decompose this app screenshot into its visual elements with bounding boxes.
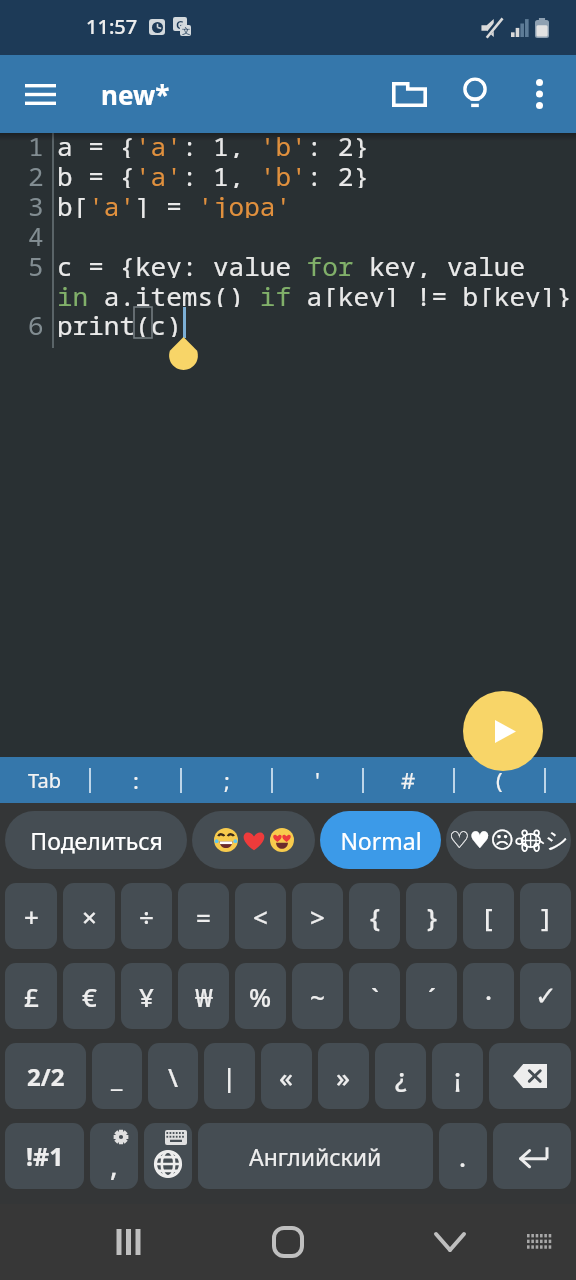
button[interactable]: · [463, 963, 514, 1029]
button[interactable]: Backspace [489, 1043, 571, 1109]
staticText: % [249, 979, 272, 1014]
button[interactable]: ✓ [520, 963, 571, 1029]
button[interactable]: < [235, 883, 286, 949]
staticText: Английский [249, 1141, 382, 1172]
button[interactable]: ¿ [375, 1043, 426, 1109]
button[interactable]: ₩ [178, 963, 229, 1029]
button[interactable]: Hide keyboard [420, 1204, 480, 1280]
button[interactable]: Keyboard switcher [510, 1204, 570, 1280]
staticText: !#1 [26, 1139, 64, 1173]
staticText: ¡ [454, 1059, 462, 1094]
button[interactable]: More options [508, 55, 570, 133]
staticText: 文 [182, 26, 190, 36]
staticText: { [370, 899, 380, 934]
button[interactable]: _ [92, 1043, 142, 1109]
staticText: Normal [340, 825, 422, 856]
button[interactable]: Enter [493, 1123, 571, 1189]
staticText: シ [545, 826, 569, 855]
staticText: 5 [28, 248, 44, 283]
staticText: Tab [28, 767, 62, 794]
staticText: · [485, 979, 493, 1014]
staticText: ` [371, 979, 379, 1014]
staticText: » [336, 1059, 351, 1094]
button[interactable]: ¥ [121, 963, 172, 1029]
staticText: print(c) [57, 307, 182, 337]
button[interactable]: Emoji suggestion [192, 811, 315, 869]
staticText: new* [101, 77, 170, 112]
button[interactable]: + [5, 883, 57, 949]
button[interactable]: Open file [376, 55, 442, 133]
staticText: € [82, 979, 97, 1014]
button[interactable]: = [178, 883, 229, 949]
staticText: ~ [310, 979, 325, 1014]
staticText: # [401, 765, 416, 795]
button[interactable]: Hints [442, 55, 508, 133]
button[interactable]: ; [182, 757, 271, 803]
button[interactable]: # [364, 757, 453, 803]
button[interactable]: » [318, 1043, 369, 1109]
button[interactable]: : [91, 757, 180, 803]
button[interactable]: Home [258, 1204, 318, 1280]
staticText: 4 [28, 218, 44, 248]
button[interactable]: ¡ [432, 1043, 483, 1109]
staticText: ¥ [139, 979, 154, 1014]
staticText: [ [484, 899, 493, 934]
button[interactable]: Change language [144, 1123, 192, 1189]
button[interactable]: Английский [198, 1123, 433, 1189]
button[interactable]: Run [463, 691, 543, 771]
staticText: ÷ [139, 899, 154, 934]
button[interactable]: > [292, 883, 343, 949]
button[interactable]: . [439, 1123, 487, 1189]
staticText: £ [24, 979, 39, 1014]
staticText: , [110, 1146, 118, 1184]
button[interactable]: ] [520, 883, 571, 949]
button[interactable]: { [349, 883, 400, 949]
staticText: . [459, 1139, 467, 1174]
button[interactable]: £ [5, 963, 57, 1029]
staticText: ; [224, 765, 230, 795]
button[interactable]: € [63, 963, 115, 1029]
button[interactable]: ´ [406, 963, 457, 1029]
button[interactable]: \ [148, 1043, 198, 1109]
button[interactable]: Emoji suggestion [446, 811, 571, 869]
staticText: c = {key: value for key, value [57, 248, 526, 278]
button[interactable]: , [90, 1123, 138, 1189]
staticText: 3 [28, 188, 44, 218]
staticText: ₩ [195, 979, 213, 1014]
staticText: in a.items() if a[key] != b[key]} [57, 278, 572, 307]
button[interactable]: | [204, 1043, 255, 1109]
staticText: Поделиться [30, 825, 163, 856]
staticText: > [310, 899, 325, 934]
staticText: : [133, 765, 139, 795]
button[interactable]: [ [463, 883, 514, 949]
button[interactable]: Recent apps [98, 1204, 158, 1280]
button[interactable]: Поделиться [5, 811, 187, 869]
button[interactable]: × [63, 883, 115, 949]
staticText: | [222, 1059, 237, 1094]
staticText: a = {'a': 1, 'b': 2} [57, 128, 370, 158]
button[interactable]: Navigation menu [0, 55, 80, 133]
button[interactable]: ~ [292, 963, 343, 1029]
button[interactable]: Normal [320, 811, 441, 869]
staticText: ✓ [535, 981, 557, 1011]
staticText: 2 [28, 158, 44, 188]
button[interactable]: 2/2 [5, 1043, 86, 1109]
staticText: ´ [428, 979, 436, 1014]
staticText: 2/2 [27, 1060, 65, 1093]
button[interactable]: } [406, 883, 457, 949]
staticText: = [196, 899, 211, 934]
button[interactable]: % [235, 963, 286, 1029]
button[interactable]: ÷ [121, 883, 172, 949]
staticText: 6 [28, 307, 44, 337]
button[interactable]: « [261, 1043, 312, 1109]
button[interactable]: Tab [0, 757, 89, 803]
button[interactable]: ' [273, 757, 362, 803]
staticText: 11:57 [86, 13, 138, 40]
button[interactable]: !#1 [5, 1123, 84, 1189]
staticText: 1 [28, 128, 44, 158]
staticText: < [253, 899, 268, 934]
button[interactable]: ` [349, 963, 400, 1029]
staticText: ( [496, 765, 503, 795]
button[interactable]: ( [455, 757, 544, 803]
staticText: × [82, 899, 97, 934]
